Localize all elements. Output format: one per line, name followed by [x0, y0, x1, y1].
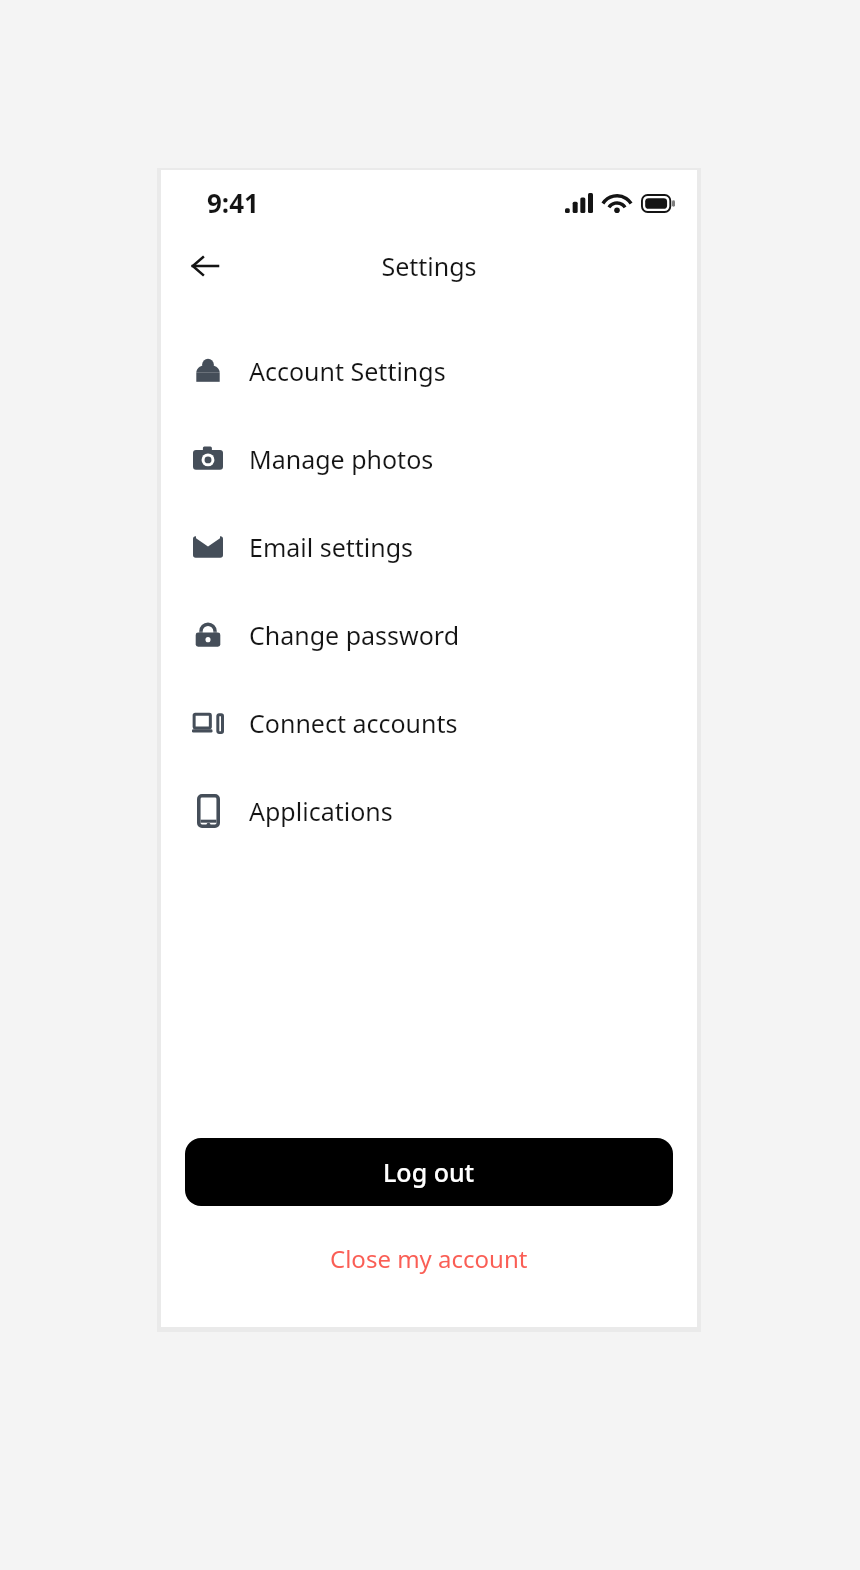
- staticText: Settings: [381, 249, 477, 283]
- staticText: 9:41: [207, 185, 259, 220]
- staticText: Applications: [249, 794, 393, 828]
- staticText: Connect accounts: [249, 706, 458, 740]
- staticText: Log out: [383, 1155, 475, 1189]
- button[interactable]: Back: [175, 236, 235, 296]
- staticText: Manage photos: [249, 442, 434, 476]
- staticText: Email settings: [249, 530, 414, 564]
- staticText: Close my account: [330, 1242, 528, 1275]
- button[interactable]: Email settings: [161, 503, 697, 591]
- button[interactable]: Close my account: [161, 1232, 697, 1285]
- staticText: Change password: [249, 618, 460, 652]
- button[interactable]: Log out: [185, 1138, 673, 1206]
- button[interactable]: Applications: [161, 767, 697, 855]
- button[interactable]: Change password: [161, 591, 697, 679]
- button[interactable]: Account Settings: [161, 327, 697, 415]
- staticText: Account Settings: [249, 354, 446, 388]
- button[interactable]: Connect accounts: [161, 679, 697, 767]
- button[interactable]: Manage photos: [161, 415, 697, 503]
